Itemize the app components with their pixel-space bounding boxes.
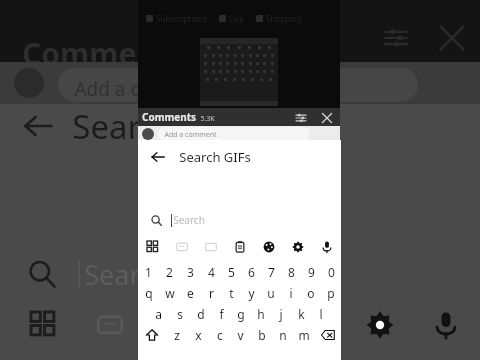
button[interactable]: e: [180, 282, 201, 303]
staticText: q: [145, 285, 153, 301]
button[interactable]: Shopping: [256, 13, 302, 24]
button[interactable]: z: [166, 324, 188, 345]
button[interactable]: s: [169, 303, 190, 324]
staticText: Add a c: [74, 76, 140, 102]
staticText: d: [197, 306, 205, 322]
staticText: 5: [228, 264, 235, 280]
button[interactable]: Clipboard: [225, 236, 254, 258]
button[interactable]: Back: [18, 104, 177, 148]
staticText: z: [174, 327, 180, 343]
button[interactable]: l: [311, 303, 331, 324]
button[interactable]: Search: [138, 208, 341, 232]
button[interactable]: Close comments: [318, 109, 336, 127]
button[interactable]: 2: [159, 261, 180, 282]
staticText: l: [319, 306, 323, 322]
button[interactable]: 4: [201, 261, 221, 282]
button[interactable]: Keyboard grid: [22, 303, 66, 347]
staticText: o: [307, 285, 315, 301]
staticText: k: [298, 306, 305, 322]
button[interactable]: [58, 68, 418, 102]
button[interactable]: Live: [219, 13, 244, 24]
staticText: r: [209, 285, 214, 301]
button[interactable]: GIF: [196, 236, 225, 258]
button[interactable]: t: [221, 282, 241, 303]
button[interactable]: 5: [221, 261, 241, 282]
button[interactable]: j: [271, 303, 291, 324]
staticText: Search GIFs: [179, 148, 251, 166]
button[interactable]: Comment filter: [293, 110, 309, 126]
staticText: i: [289, 285, 293, 301]
button[interactable]: p: [321, 282, 341, 303]
staticText: v: [237, 327, 244, 343]
button[interactable]: Voice input: [424, 303, 468, 347]
staticText: Search: [72, 104, 177, 148]
button[interactable]: Back: [147, 146, 169, 168]
button[interactable]: x: [188, 324, 209, 345]
staticText: m: [298, 327, 310, 343]
button[interactable]: 1: [138, 261, 159, 282]
staticText: g: [237, 306, 245, 322]
button[interactable]: 3: [180, 261, 201, 282]
staticText: t: [229, 285, 234, 301]
button[interactable]: 7: [261, 261, 281, 282]
button[interactable]: d: [190, 303, 211, 324]
button[interactable]: Voice input: [312, 236, 341, 258]
button[interactable]: Settings: [283, 236, 312, 258]
button[interactable]: i: [281, 282, 301, 303]
button[interactable]: [158, 127, 310, 141]
staticText: 3: [187, 264, 194, 280]
button[interactable]: 9: [301, 261, 321, 282]
button[interactable]: Close: [432, 18, 472, 58]
button[interactable]: Backspace: [314, 324, 341, 345]
staticText: u: [267, 285, 275, 301]
button[interactable]: Back: [138, 140, 341, 174]
staticText: Search: [173, 213, 205, 227]
button[interactable]: GIF: [88, 303, 132, 347]
button[interactable]: q: [138, 282, 159, 303]
staticText: 0: [328, 264, 335, 280]
staticText: y: [248, 285, 255, 301]
staticText: j: [279, 306, 283, 322]
staticText: p: [327, 285, 335, 301]
button[interactable]: f: [211, 303, 231, 324]
button[interactable]: Shift: [138, 324, 166, 345]
button[interactable]: w: [159, 282, 180, 303]
button[interactable]: h: [251, 303, 271, 324]
staticText: 5.3K: [200, 114, 215, 124]
button[interactable]: Filter: [378, 20, 414, 56]
button[interactable]: 6: [241, 261, 261, 282]
button[interactable]: k: [291, 303, 311, 324]
button[interactable]: 8: [281, 261, 301, 282]
button[interactable]: g: [231, 303, 251, 324]
staticText: h: [257, 306, 265, 322]
button[interactable]: 0: [321, 261, 341, 282]
staticText: c: [217, 327, 223, 343]
staticText: s: [177, 306, 183, 322]
staticText: Add a comment: [164, 130, 217, 140]
staticText: w: [165, 285, 175, 301]
button[interactable]: c: [209, 324, 230, 345]
staticText: 4: [208, 264, 215, 280]
staticText: a: [155, 306, 162, 322]
button[interactable]: b: [251, 324, 272, 345]
staticText: Live: [229, 13, 244, 24]
button[interactable]: a: [148, 303, 169, 324]
button[interactable]: v: [230, 324, 251, 345]
button[interactable]: n: [272, 324, 293, 345]
button[interactable]: Settings: [358, 303, 402, 347]
staticText: 8: [288, 264, 295, 280]
button[interactable]: m: [293, 324, 314, 345]
button[interactable]: Subscriptions: [146, 13, 207, 24]
button[interactable]: o: [301, 282, 321, 303]
button[interactable]: Theme: [254, 236, 283, 258]
other: Search: [147, 211, 165, 229]
button[interactable]: r: [201, 282, 221, 303]
staticText: 1: [145, 264, 152, 280]
button[interactable]: Keyboard grid: [138, 236, 167, 258]
button[interactable]: u: [261, 282, 281, 303]
staticText: Search: [84, 256, 170, 293]
button[interactable]: Stickers: [167, 236, 196, 258]
button[interactable]: Search: [22, 250, 170, 298]
button[interactable]: y: [241, 282, 261, 303]
